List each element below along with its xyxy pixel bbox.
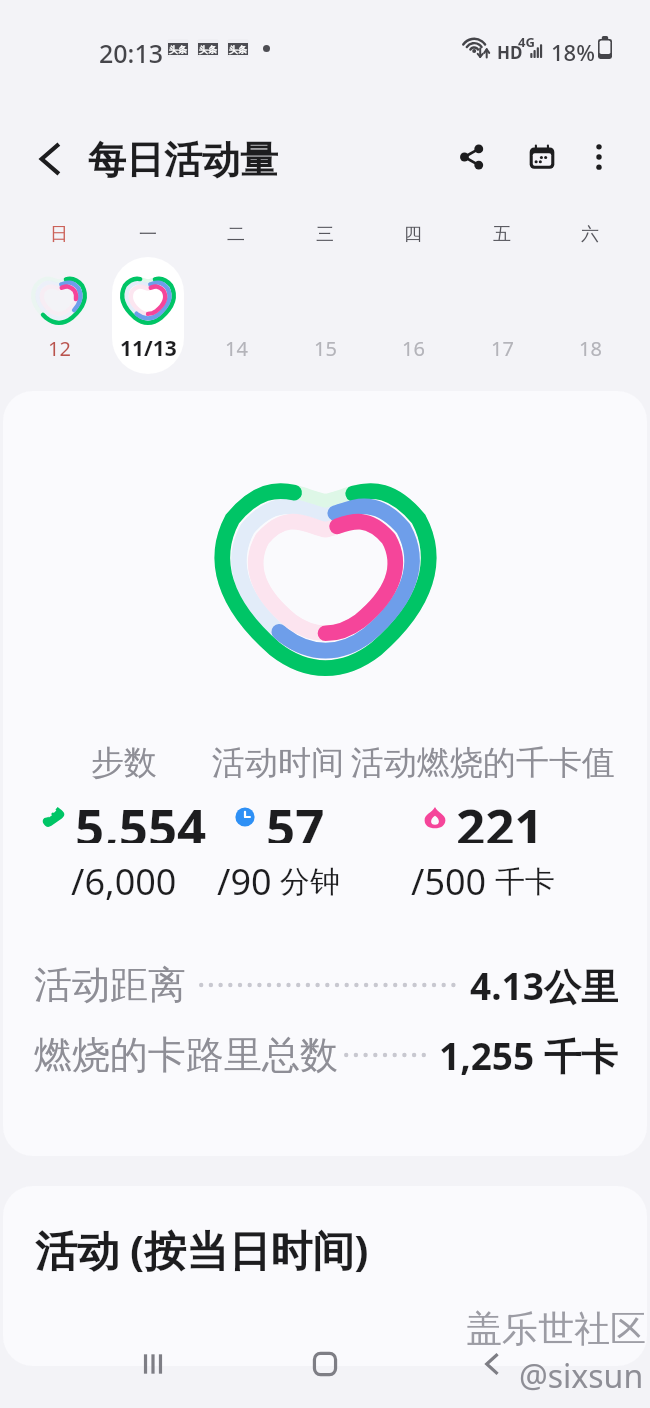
button[interactable]: Calendar [516, 131, 568, 183]
staticText: @sixsun [519, 1354, 644, 1398]
staticText: 18% [551, 37, 595, 67]
staticText: 三 [316, 223, 334, 246]
staticText: 15 [314, 335, 337, 362]
staticText: 16 [402, 335, 425, 362]
staticText: 18 [579, 335, 602, 362]
button[interactable]: More options [573, 131, 625, 183]
staticText: 六 [581, 223, 599, 246]
staticText: 活动 (按当日时间) [35, 1221, 369, 1278]
staticText: /500 [411, 857, 487, 901]
button[interactable]: Home [303, 1342, 347, 1386]
staticText: 活动距离 [34, 961, 186, 1009]
staticText: 盖乐世社区 [466, 1306, 646, 1351]
staticText: 二 [227, 223, 245, 246]
staticText: 活动燃烧的千卡值 [351, 742, 615, 784]
staticText: /90 [217, 857, 272, 901]
staticText: 头条 [229, 44, 247, 55]
staticText: 20:13 [99, 36, 164, 70]
button[interactable]: Share [446, 131, 498, 183]
staticText: 步数 [91, 742, 157, 784]
staticText: 一 [139, 223, 157, 246]
staticText: 头条 [199, 44, 217, 55]
staticText: 头条 [169, 44, 187, 55]
staticText: HD [497, 41, 523, 64]
staticText: 17 [491, 335, 514, 362]
button[interactable]: Back [470, 1342, 514, 1386]
staticText: 活动时间 [212, 742, 344, 784]
staticText: 14 [225, 335, 248, 362]
staticText: 日 [50, 223, 68, 246]
staticText: 12 [48, 335, 71, 362]
staticText: 燃烧的卡路里总数 [34, 1031, 338, 1079]
button[interactable] [112, 257, 184, 374]
staticText: 分钟 [280, 863, 340, 901]
staticText: 五 [493, 223, 511, 246]
staticText: 4G [518, 33, 535, 51]
staticText: 57 [266, 791, 325, 843]
staticText: 221 [456, 791, 544, 843]
staticText: 每日活动量 [88, 136, 278, 184]
staticText: 5,554 [75, 791, 207, 843]
staticText: 4.13公里 [470, 960, 618, 1010]
staticText: /6,000 [71, 857, 177, 901]
button[interactable]: Recent apps [131, 1342, 175, 1386]
staticText: 千卡 [495, 863, 555, 901]
staticText: 四 [404, 223, 422, 246]
staticText: 1,255 千卡 [439, 1030, 618, 1080]
button[interactable]: Back [24, 133, 76, 185]
staticText: 11/13 [120, 334, 177, 363]
